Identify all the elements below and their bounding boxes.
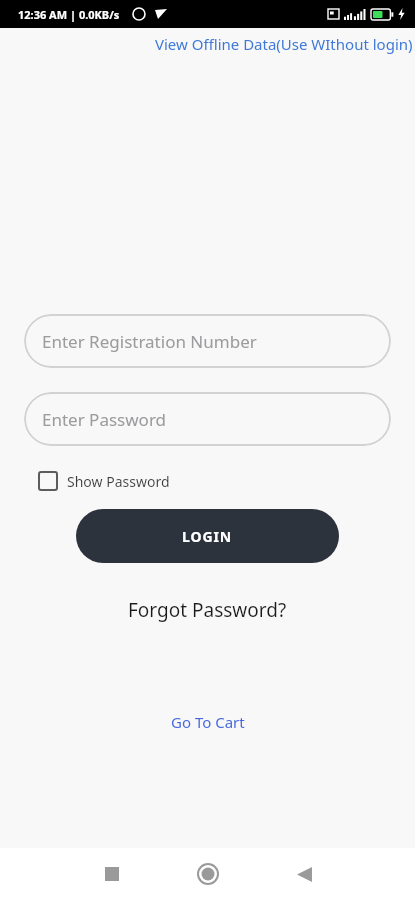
button[interactable]: Go To Cart: [161, 708, 255, 736]
staticText: Forgot Password?: [128, 597, 287, 623]
staticText: LOGIN: [182, 527, 233, 546]
button[interactable]: Recent apps: [64, 850, 160, 898]
staticText: 12:36 AM | 0.0KB/s: [18, 7, 120, 22]
button[interactable]: Forgot Password?: [118, 593, 297, 627]
button[interactable]: Back: [256, 850, 352, 898]
staticText: Enter Registration Number: [42, 330, 257, 353]
button[interactable]: Enter Password: [24, 392, 391, 446]
button[interactable]: Enter Registration Number: [24, 314, 391, 368]
button[interactable]: Show Password: [32, 467, 176, 495]
button[interactable]: LOGIN: [76, 509, 339, 563]
staticText: Go To Cart: [171, 712, 245, 732]
staticText: View Offline Data(Use WIthout login): [155, 34, 413, 54]
button[interactable]: View Offline Data(Use WIthout login): [153, 32, 415, 56]
staticText: Enter Password: [42, 408, 167, 431]
button[interactable]: Home: [160, 850, 256, 898]
staticText: Show Password: [67, 472, 170, 491]
